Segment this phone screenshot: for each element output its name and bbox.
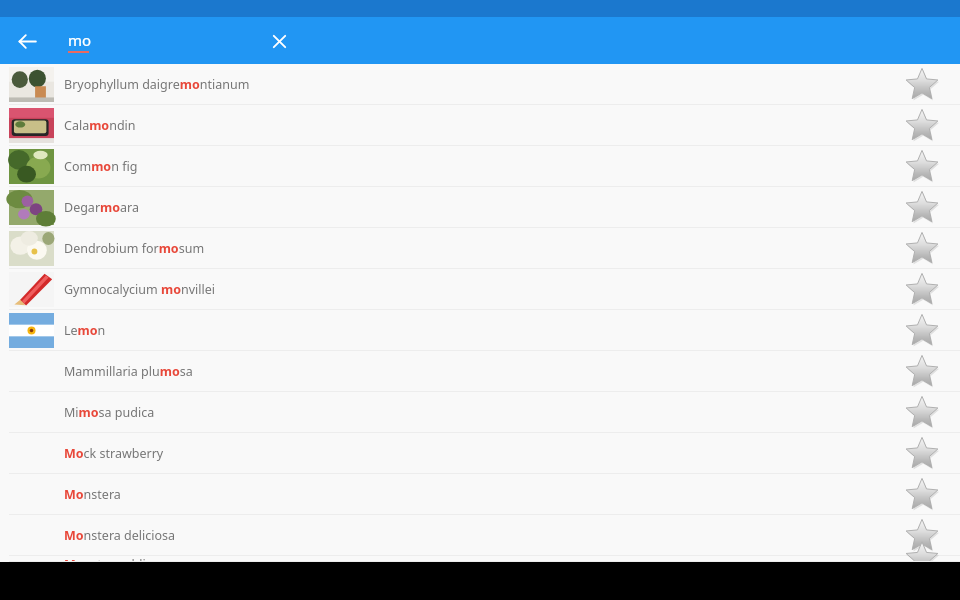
staticText: Mammillaria plumosa: [64, 363, 884, 380]
button[interactable]: Back: [5, 19, 49, 63]
staticText: mo: [68, 30, 92, 50]
staticText: Dendrobium formosum: [64, 240, 884, 257]
button[interactable]: Add to favourites: [884, 187, 960, 227]
staticText: Mock strawberry: [64, 445, 884, 462]
button[interactable]: Calamondin: [0, 105, 960, 146]
staticText: Calamondin: [64, 117, 884, 134]
staticText: Lemon: [64, 322, 884, 339]
button[interactable]: Add to favourites: [884, 228, 960, 268]
button[interactable]: Dendrobium formosum: [0, 228, 960, 269]
button[interactable]: Gymnocalycium monvillei: [0, 269, 960, 310]
button[interactable]: Monstera: [0, 474, 960, 515]
button[interactable]: Mimosa pudica: [0, 392, 960, 433]
button[interactable]: Add to favourites: [884, 474, 960, 514]
button[interactable]: Mammillaria plumosa: [0, 351, 960, 392]
button[interactable]: Add to favourites: [884, 515, 960, 555]
button[interactable]: Add to favourites: [884, 433, 960, 473]
staticText: Gymnocalycium monvillei: [64, 281, 884, 298]
button[interactable]: Bryophyllum daigremontianum: [0, 64, 960, 105]
button[interactable]: Monstera deliciosa: [0, 515, 960, 556]
button[interactable]: Mock strawberry: [0, 433, 960, 474]
button[interactable]: Add to favourites: [884, 146, 960, 186]
button[interactable]: Degarmoara: [0, 187, 960, 228]
staticText: Bryophyllum daigremontianum: [64, 76, 884, 93]
staticText: Monstera deliciosa: [64, 527, 884, 544]
button[interactable]: Add to favourites: [884, 269, 960, 309]
button[interactable]: Common fig: [0, 146, 960, 187]
staticText: Monstera: [64, 486, 884, 503]
button[interactable]: Add to favourites: [884, 105, 960, 145]
staticText: Mimosa pudica: [64, 404, 884, 421]
button[interactable]: mo: [68, 30, 92, 53]
button[interactable]: Add to favourites: [884, 310, 960, 350]
staticText: Degarmoara: [64, 199, 884, 216]
button[interactable]: Add to favourites: [884, 351, 960, 391]
staticText: Common fig: [64, 158, 884, 175]
button[interactable]: Clear search: [257, 19, 301, 63]
button[interactable]: Lemon: [0, 310, 960, 351]
staticText: Monstera obliqua: [64, 556, 884, 561]
button[interactable]: Monstera obliqua: [0, 556, 960, 562]
button[interactable]: Add to favourites: [884, 556, 960, 561]
button[interactable]: Add to favourites: [884, 64, 960, 104]
button[interactable]: Add to favourites: [884, 392, 960, 432]
